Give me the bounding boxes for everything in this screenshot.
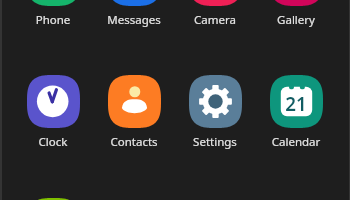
staticText: Camera [173,12,257,28]
button[interactable]: Camera [189,0,242,6]
button[interactable]: Phone [27,0,80,6]
staticText: Gallery [254,12,338,28]
staticText: 21 [276,91,316,117]
staticText: Calendar [254,134,338,150]
button[interactable]: Gallery [270,0,323,6]
button[interactable]: Messages [108,0,161,6]
staticText: Contacts [92,134,176,150]
staticText: Messages [92,12,176,28]
button[interactable]: Settings [189,75,242,128]
button[interactable]: Maps [27,198,80,200]
staticText: Settings [173,134,257,150]
button[interactable]: Contacts [108,75,161,128]
button[interactable]: Clock [27,75,80,128]
button[interactable]: Calendar [270,75,323,128]
staticText: Phone [11,12,95,28]
staticText: Clock [11,134,95,150]
